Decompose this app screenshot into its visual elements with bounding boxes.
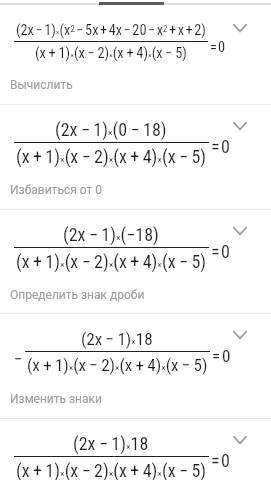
staticText: Определить знак дроби <box>10 288 145 302</box>
staticText: (2x − 1)×(0 − 18) <box>55 119 167 140</box>
button[interactable]: Expand step <box>227 322 253 348</box>
button[interactable]: (2x − 1)×18 <box>0 419 271 480</box>
staticText: = <box>212 346 221 366</box>
staticText: (x + 1)×(x − 2)×(x + 4)×(x − 5) <box>16 146 207 167</box>
staticText: (x + 1)×(x − 2)×(x + 4)×(x − 5) <box>27 355 208 375</box>
staticText: = <box>210 39 217 56</box>
staticText: 0 <box>221 450 230 471</box>
button[interactable]: Expand step <box>227 218 253 244</box>
button[interactable]: (2x − 1)×(0 − 18) <box>0 105 271 210</box>
staticText: (x + 1)×(x − 2)×(x + 4)×(x − 5) <box>16 251 207 272</box>
staticText: (2x − 1)×(−18) <box>63 224 159 245</box>
staticText: 0 <box>221 241 230 262</box>
staticText: Избавиться от 0 <box>10 183 102 197</box>
staticText: 0 <box>218 39 226 56</box>
staticText: (x + 1)×(x − 2)×(x + 4)×(x − 5) <box>16 460 207 480</box>
staticText: (2x − 1)×18 <box>81 329 153 349</box>
staticText: Изменить знаки <box>10 392 102 406</box>
button[interactable]: Expand step <box>227 427 253 453</box>
staticText: (2x − 1)×18 <box>73 433 149 454</box>
staticText: Вычислить <box>10 78 73 92</box>
button[interactable]: (2x − 1)×(x2 − 5x + 4x − 20 − x2 + x + 2… <box>0 7 271 105</box>
staticText: = <box>211 241 220 262</box>
staticText: (2x − 1)×(x2 − 5x + 4x − 20 − x2 + x + 2… <box>16 22 206 39</box>
staticText: (x + 1)×(x − 2)×(x + 4)×(x − 5) <box>35 45 187 62</box>
staticText: − <box>14 349 23 369</box>
button[interactable]: Expand step <box>227 113 253 139</box>
staticText: = <box>211 136 220 157</box>
staticText: = <box>211 450 220 471</box>
button[interactable]: (2x − 1)×(−18) <box>0 210 271 314</box>
staticText: 0 <box>221 136 230 157</box>
button[interactable]: − <box>0 314 271 419</box>
button[interactable]: Expand step <box>227 15 253 41</box>
staticText: 0 <box>222 346 231 366</box>
